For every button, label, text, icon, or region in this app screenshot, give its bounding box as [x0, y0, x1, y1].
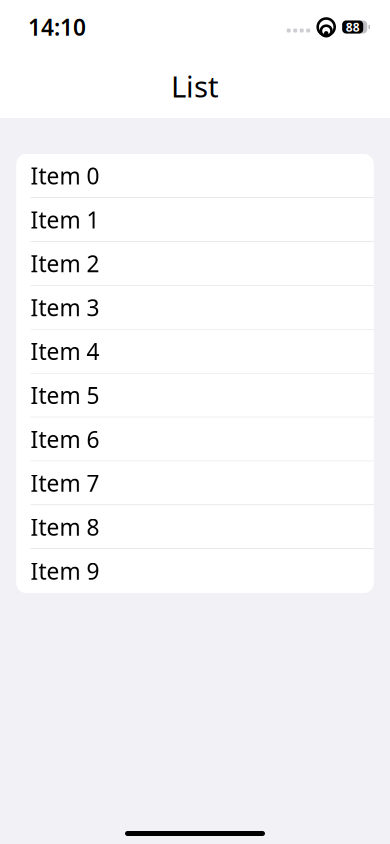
button[interactable]: Item 0 — [16, 154, 373, 198]
staticText: Item 6 — [30, 424, 99, 454]
staticText: Item 0 — [30, 161, 99, 191]
staticText: Item 7 — [30, 468, 99, 498]
staticText: List — [171, 66, 219, 105]
staticText: Item 4 — [30, 336, 99, 366]
staticText: Item 5 — [30, 380, 99, 410]
button[interactable]: Item 4 — [16, 330, 373, 373]
staticText: Item 3 — [30, 292, 99, 322]
button[interactable]: Item 3 — [16, 286, 373, 330]
staticText: Item 9 — [30, 556, 99, 586]
button[interactable]: Item 6 — [16, 417, 373, 461]
button[interactable]: Item 1 — [16, 198, 373, 242]
staticText: Item 1 — [30, 204, 99, 235]
button[interactable]: Item 7 — [16, 461, 373, 505]
staticText: Item 8 — [30, 512, 99, 542]
staticText: 88 — [346, 19, 360, 35]
button[interactable]: Item 9 — [16, 549, 373, 593]
button[interactable]: Item 2 — [16, 242, 373, 286]
button[interactable]: Item 5 — [16, 373, 373, 417]
button[interactable]: Item 8 — [16, 505, 373, 549]
staticText: 14:10 — [28, 12, 86, 42]
staticText: Item 2 — [30, 248, 99, 278]
